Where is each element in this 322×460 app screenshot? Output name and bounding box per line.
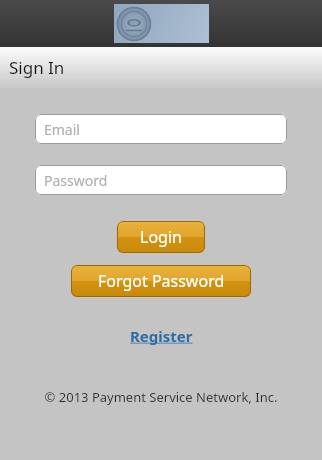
staticText: Email bbox=[44, 120, 80, 139]
staticText: © 2013 Payment Service Network, Inc. bbox=[0, 388, 322, 406]
other: Company logo bbox=[114, 4, 209, 43]
staticText: Sign In bbox=[9, 56, 65, 79]
button[interactable]: Email bbox=[35, 114, 287, 144]
button[interactable]: Login bbox=[117, 221, 205, 253]
button[interactable]: Forgot Password bbox=[71, 265, 251, 297]
button[interactable]: Register bbox=[124, 324, 199, 348]
staticText: Login bbox=[140, 226, 182, 248]
staticText: Forgot Password bbox=[98, 270, 225, 292]
staticText: Password bbox=[44, 171, 108, 190]
button[interactable]: Password bbox=[35, 165, 287, 195]
staticText: Register bbox=[130, 326, 193, 346]
